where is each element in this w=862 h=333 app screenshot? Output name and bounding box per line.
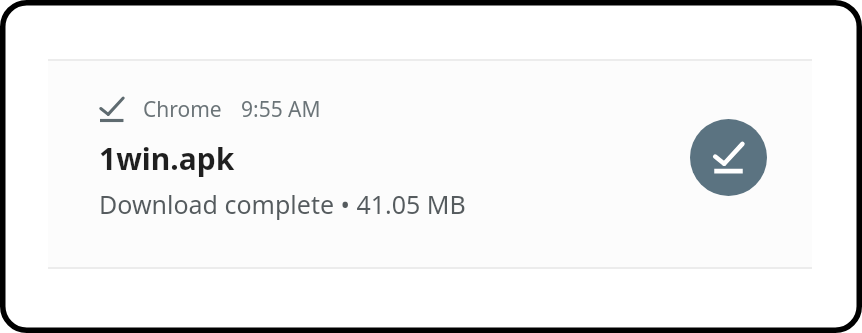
other: Download complete <box>99 96 125 123</box>
staticText: 1win.apk <box>99 138 235 179</box>
staticText: 9:55 AM <box>241 95 321 124</box>
staticText: Chrome <box>143 95 222 124</box>
button[interactable]: Open download <box>690 119 767 196</box>
staticText: Download complete • 41.05 MB <box>99 187 466 221</box>
button[interactable]: Download complete <box>48 59 812 269</box>
